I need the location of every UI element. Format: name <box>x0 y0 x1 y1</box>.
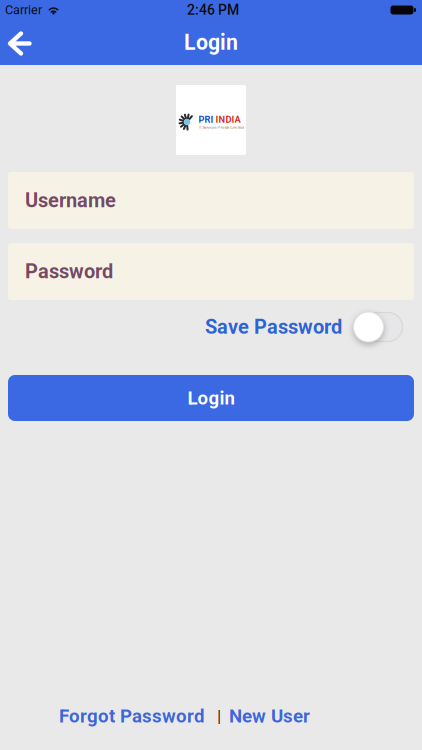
staticText: New User <box>229 705 310 727</box>
staticText: | <box>205 706 229 726</box>
staticText: Username <box>25 189 116 212</box>
staticText: IT Services Private Limited <box>198 125 243 130</box>
button[interactable]: Username <box>8 172 414 229</box>
button[interactable]: New User <box>229 705 310 727</box>
staticText: 2:46 PM <box>187 2 239 18</box>
staticText: INDIA <box>215 114 240 125</box>
staticText: Login <box>187 387 234 409</box>
staticText: Save Password <box>205 315 342 339</box>
button[interactable] <box>354 312 403 342</box>
staticText: Login <box>184 30 238 55</box>
staticText: Password <box>25 260 113 283</box>
button[interactable]: Forgot Password <box>59 705 205 727</box>
button[interactable]: Login <box>0 375 422 421</box>
button[interactable] <box>0 30 32 54</box>
staticText: PRI <box>198 114 213 125</box>
staticText: Carrier <box>5 3 42 17</box>
staticText: Forgot Password <box>59 705 205 727</box>
button[interactable]: Password <box>8 243 414 300</box>
